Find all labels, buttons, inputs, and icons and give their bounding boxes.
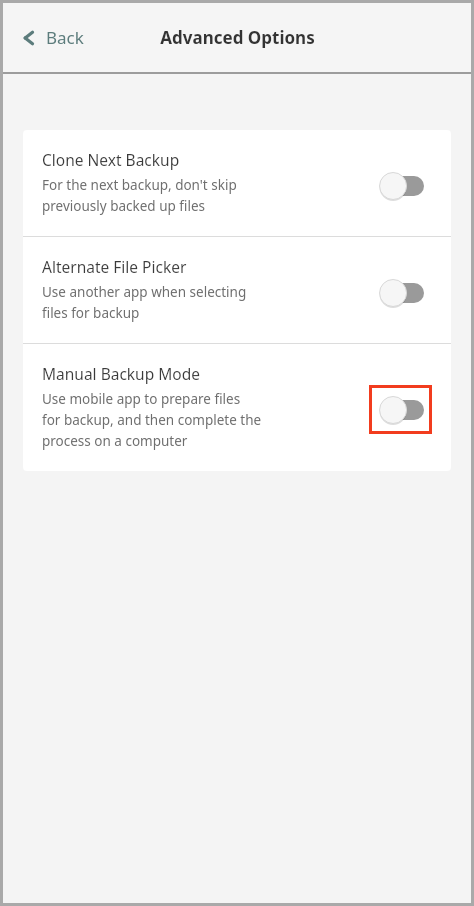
staticText: Advanced Options	[160, 26, 315, 49]
button[interactable]: Alternate File Picker	[23, 237, 451, 343]
staticText: files for backup	[42, 304, 140, 322]
button[interactable]: Clone Next Backup	[23, 130, 451, 236]
staticText: process on a computer	[42, 432, 188, 450]
staticText: previously backed up files	[42, 197, 205, 215]
button[interactable]: Toggle setting	[369, 385, 432, 434]
button[interactable]: Manual Backup Mode	[23, 344, 451, 471]
staticText: For the next backup, don't skip	[42, 176, 237, 194]
staticText: Clone Next Backup	[42, 149, 180, 170]
button[interactable]: Toggle setting	[369, 161, 432, 210]
staticText: for backup, and then complete the	[42, 411, 262, 429]
staticText: Use another app when selecting	[42, 283, 247, 301]
staticText: Alternate File Picker	[42, 256, 187, 277]
staticText: Manual Backup Mode	[42, 363, 200, 384]
button[interactable]: Toggle setting	[369, 268, 432, 317]
button[interactable]: Back	[15, 18, 90, 57]
staticText: Back	[46, 26, 84, 49]
staticText: Use mobile app to prepare files	[42, 390, 241, 408]
